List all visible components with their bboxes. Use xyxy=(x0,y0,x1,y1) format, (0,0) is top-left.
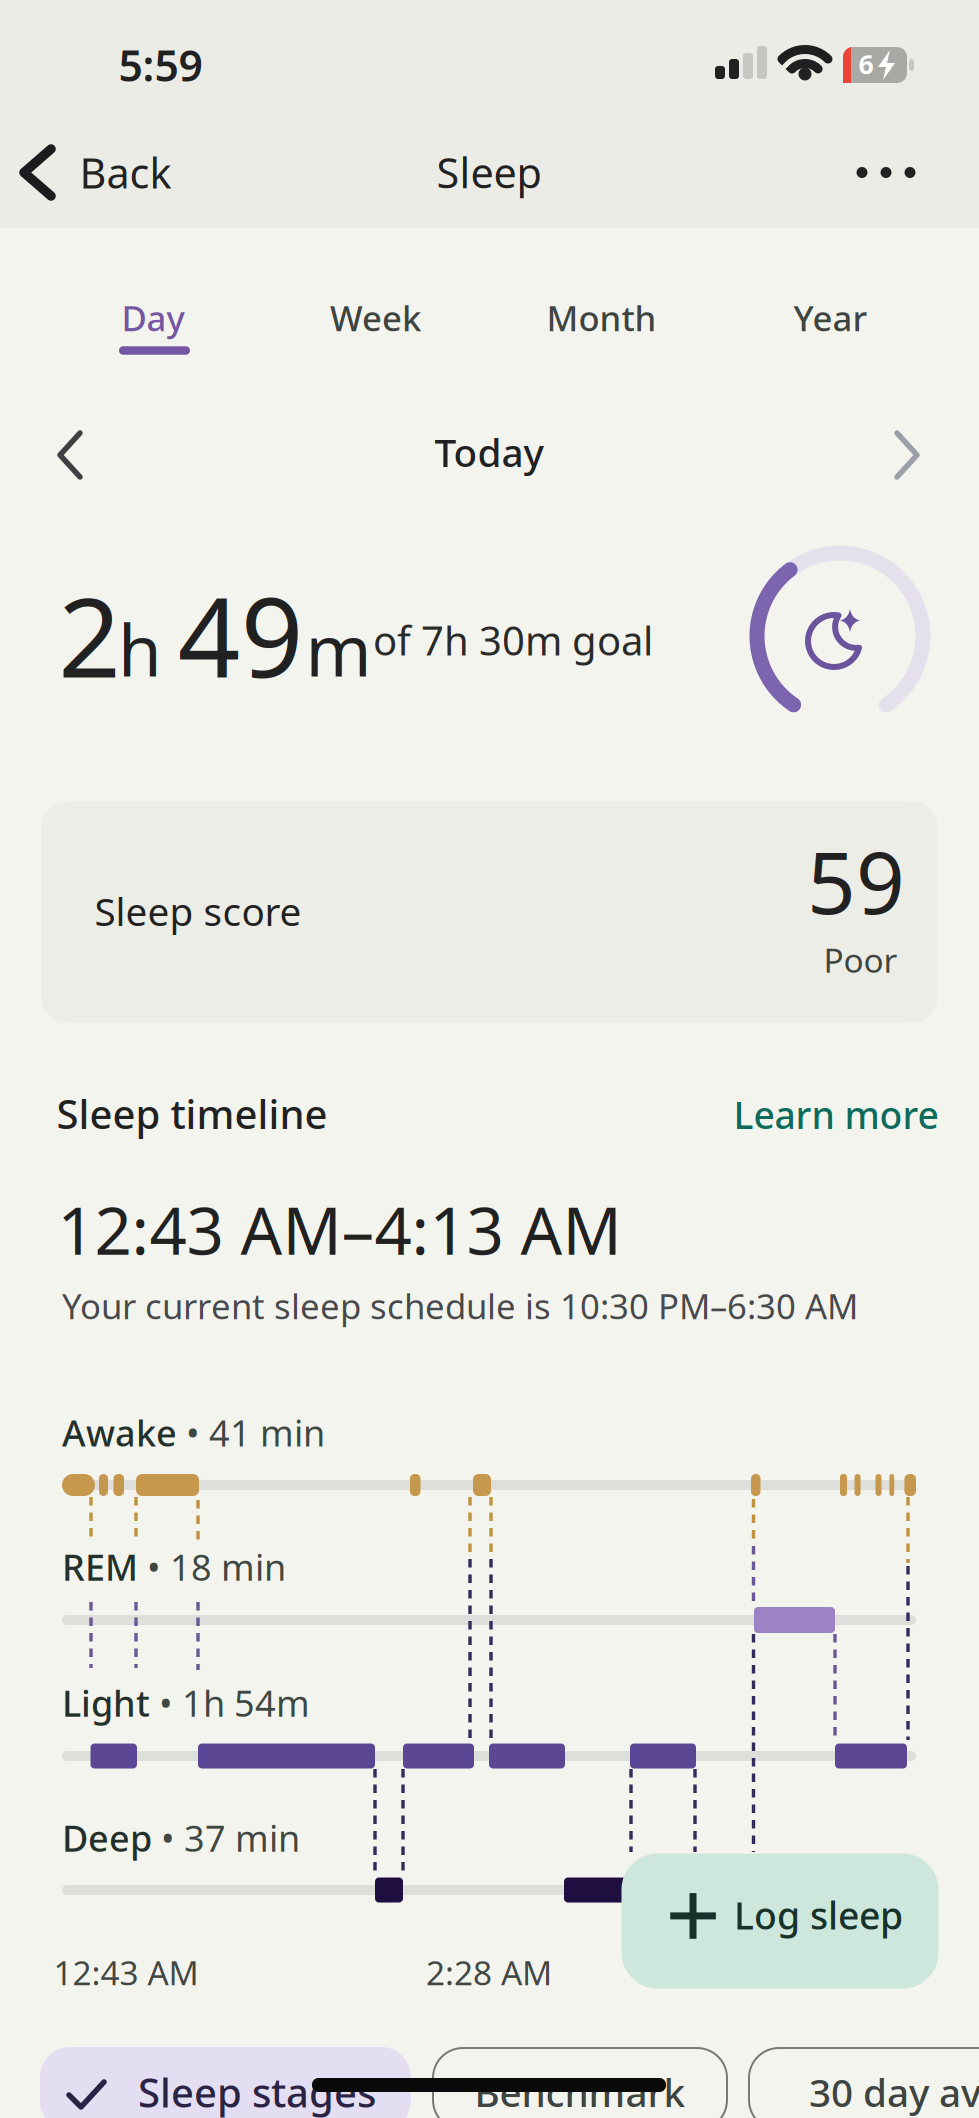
staticText: REM xyxy=(62,1543,138,1591)
staticText: 59 xyxy=(807,824,905,938)
button[interactable]: Back xyxy=(0,133,200,213)
staticText: m xyxy=(305,602,371,696)
staticText: Sleep timeline xyxy=(56,1087,327,1140)
button[interactable]: Year xyxy=(745,273,915,363)
staticText: Log sleep xyxy=(734,1890,903,1940)
staticText: Sleep xyxy=(436,145,541,200)
staticText: Back xyxy=(79,145,171,200)
button[interactable]: Week xyxy=(285,273,465,363)
staticText: 2 xyxy=(58,562,121,708)
staticText: 5:59 xyxy=(118,37,202,93)
staticText: Sleep score xyxy=(94,885,301,936)
staticText: • 1h 54m xyxy=(150,1679,310,1727)
staticText: 6 xyxy=(858,46,873,82)
button[interactable]: Benchmark xyxy=(432,2047,728,2118)
button[interactable]: Sleep stages xyxy=(40,2047,411,2118)
button[interactable]: Learn more xyxy=(733,1090,938,1139)
staticText: 12:43 AM–4:13 AM xyxy=(58,1186,622,1273)
staticText: Benchmark xyxy=(474,2066,685,2118)
staticText: Deep xyxy=(62,1814,152,1862)
staticText: Learn more xyxy=(733,1090,938,1139)
button[interactable] xyxy=(41,801,938,1023)
staticText: • 41 min xyxy=(177,1409,325,1456)
staticText: Your current sleep schedule is 10:30 PM–… xyxy=(62,1283,858,1329)
staticText: Poor xyxy=(823,938,897,982)
staticText: Light xyxy=(62,1679,150,1727)
staticText: Awake xyxy=(62,1409,177,1456)
staticText: Day xyxy=(121,295,184,341)
staticText: Today xyxy=(434,426,543,477)
staticText: • 37 min xyxy=(152,1814,300,1862)
staticText: Week xyxy=(330,295,421,341)
staticText: 12:43 AM xyxy=(53,1950,198,1995)
staticText: 30 day average xyxy=(809,2066,979,2118)
button[interactable]: Day xyxy=(68,273,238,363)
staticText: • 18 min xyxy=(138,1543,286,1591)
staticText: h xyxy=(118,602,162,696)
staticText: 2:28 AM xyxy=(426,1950,552,1995)
button[interactable] xyxy=(30,425,110,485)
staticText: of 7h 30m goal xyxy=(373,613,653,666)
button[interactable]: Log sleep xyxy=(621,1853,938,1988)
staticText: 49 xyxy=(178,562,304,708)
button[interactable]: 30 day average xyxy=(748,2047,979,2118)
staticText: Sleep stages xyxy=(138,2065,376,2118)
button[interactable] xyxy=(867,425,947,485)
staticText: Month xyxy=(546,295,656,341)
button[interactable]: Month xyxy=(506,273,696,363)
button[interactable] xyxy=(856,167,915,178)
staticText: Year xyxy=(793,295,867,341)
